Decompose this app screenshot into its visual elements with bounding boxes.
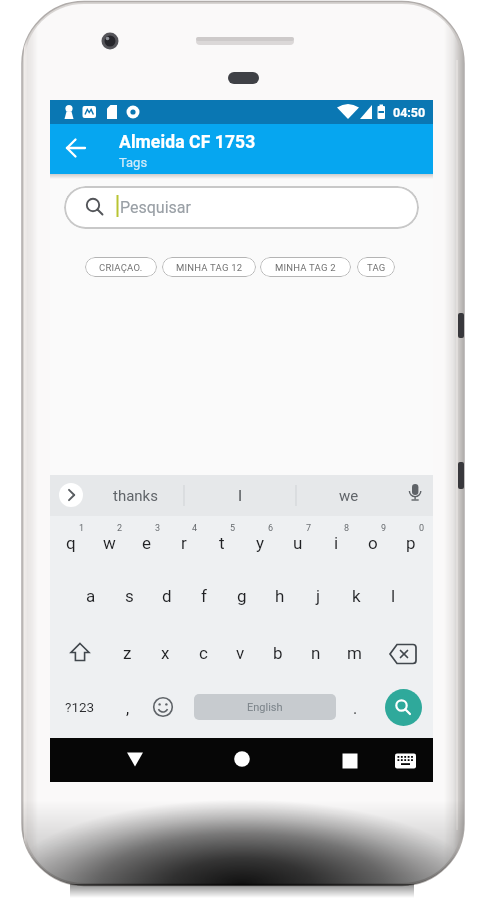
staticText: c [199,643,208,663]
button[interactable]: ?123 [60,693,100,721]
button[interactable]: s [112,580,146,612]
staticText: 3 [155,523,161,534]
button[interactable]: k [339,580,373,612]
staticText: s [125,586,134,606]
button[interactable] [226,743,258,775]
button[interactable]: e [130,527,164,559]
button[interactable]: q [54,527,88,559]
button[interactable]: j [301,580,335,612]
button[interactable]: u [281,527,315,559]
staticText: t [219,533,225,553]
button[interactable]: y [243,527,277,559]
staticText: g [237,586,247,606]
staticText: p [406,533,416,553]
button[interactable] [151,695,175,719]
button[interactable] [394,752,418,770]
button[interactable] [385,689,422,726]
staticText: q [66,533,76,553]
staticText: 0 [419,523,425,534]
button[interactable]: I [220,481,260,511]
staticText: Pesquisar [120,198,191,217]
button[interactable] [119,743,151,775]
staticText: 5 [230,523,236,534]
button[interactable]: b [261,637,295,669]
staticText: n [311,643,321,663]
button[interactable]: m [337,637,371,669]
staticText: o [368,533,378,553]
button[interactable]: t [205,527,239,559]
staticText: l [391,586,396,606]
button[interactable] [385,637,421,669]
staticText: CRIAÇAO. [99,262,143,273]
button[interactable] [62,637,98,669]
staticText: 2 [117,523,123,534]
staticText: f [201,586,207,606]
staticText: y [256,533,265,553]
button[interactable]: , [118,694,138,722]
button[interactable] [59,483,83,507]
staticText: a [86,586,96,606]
staticText: 6 [268,523,274,534]
button[interactable]: we [329,481,369,511]
staticText: Tags [119,155,148,170]
staticText: 8 [344,523,350,534]
staticText: r [181,533,187,553]
staticText: u [293,533,303,553]
button[interactable]: v [223,637,257,669]
staticText: , [126,699,130,718]
staticText: thanks [113,487,158,505]
button[interactable]: l [376,580,410,612]
button[interactable]: w [92,527,126,559]
staticText: Almeida CF 1753 [119,132,256,153]
button[interactable]: English [194,694,336,720]
staticText: . [353,699,358,718]
button[interactable]: o [356,527,390,559]
staticText: v [236,643,245,663]
button[interactable]: . [345,694,365,722]
staticText: w [103,533,116,553]
button[interactable]: MINHA TAG 2 [260,257,351,277]
staticText: 7 [306,523,312,534]
staticText: h [275,586,285,606]
staticText: ?123 [65,699,95,715]
staticText: z [123,643,132,663]
staticText: i [334,533,339,553]
button[interactable]: MINHA TAG 12 [162,257,256,277]
button[interactable]: thanks [102,481,168,511]
button[interactable]: g [225,580,259,612]
staticText: m [347,643,362,663]
button[interactable]: TAG [357,257,395,277]
staticText: MINHA TAG 2 [275,262,336,273]
button[interactable]: f [187,580,221,612]
staticText: 1 [79,523,85,534]
staticText: we [339,487,359,505]
button[interactable]: c [186,637,220,669]
button[interactable]: d [150,580,184,612]
staticText: TAG [367,262,386,273]
button[interactable]: x [148,637,182,669]
staticText: b [273,643,283,663]
button[interactable] [334,745,366,777]
button[interactable]: a [74,580,108,612]
button[interactable]: r [167,527,201,559]
button[interactable]: h [263,580,297,612]
staticText: 9 [381,523,387,534]
staticText: 04:50 [393,105,426,120]
staticText: MINHA TAG 12 [176,262,243,273]
button[interactable]: z [110,637,144,669]
staticText: k [352,586,361,606]
button[interactable]: i [319,527,353,559]
staticText: x [161,643,170,663]
staticText: j [316,586,321,606]
staticText: d [162,586,172,606]
staticText: I [238,487,243,505]
staticText: e [142,533,152,553]
button[interactable]: CRIAÇAO. [85,257,157,277]
button[interactable] [64,186,419,229]
staticText: English [247,701,283,714]
staticText: 4 [192,523,198,534]
button[interactable] [58,130,94,166]
button[interactable]: n [299,637,333,669]
button[interactable]: p [394,527,428,559]
